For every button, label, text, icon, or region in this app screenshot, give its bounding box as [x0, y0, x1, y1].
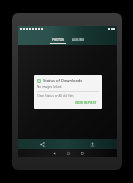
- staticText: PHOTOS: [52, 38, 64, 42]
- button[interactable]: Recents: [75, 149, 89, 157]
- button[interactable]: VIEW REPORT: [73, 100, 99, 106]
- button[interactable]: Upload: [67, 139, 117, 149]
- staticText: No images linked.: [37, 85, 63, 89]
- button[interactable]: Back: [47, 149, 61, 157]
- button[interactable]: Share: [18, 139, 67, 149]
- button[interactable]: ALBUMS: [70, 37, 86, 45]
- button[interactable]: Home: [61, 149, 75, 157]
- staticText: ALBUMS: [72, 38, 85, 42]
- button[interactable]: PHOTOS: [50, 37, 66, 45]
- staticText: Status of Downloads: [43, 78, 83, 83]
- staticText: Clear Status or All old files: [37, 94, 74, 98]
- staticText: VIEW REPORT: [75, 101, 97, 105]
